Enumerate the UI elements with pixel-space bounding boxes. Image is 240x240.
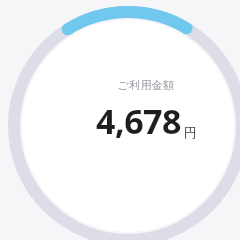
staticText: ご利用金額 bbox=[117, 78, 175, 92]
staticText: 4,678 bbox=[96, 98, 181, 144]
button[interactable]: Spending progress bbox=[0, 0, 240, 240]
staticText: 円 bbox=[184, 124, 197, 140]
button[interactable]: ご利用金額 bbox=[66, 78, 226, 144]
